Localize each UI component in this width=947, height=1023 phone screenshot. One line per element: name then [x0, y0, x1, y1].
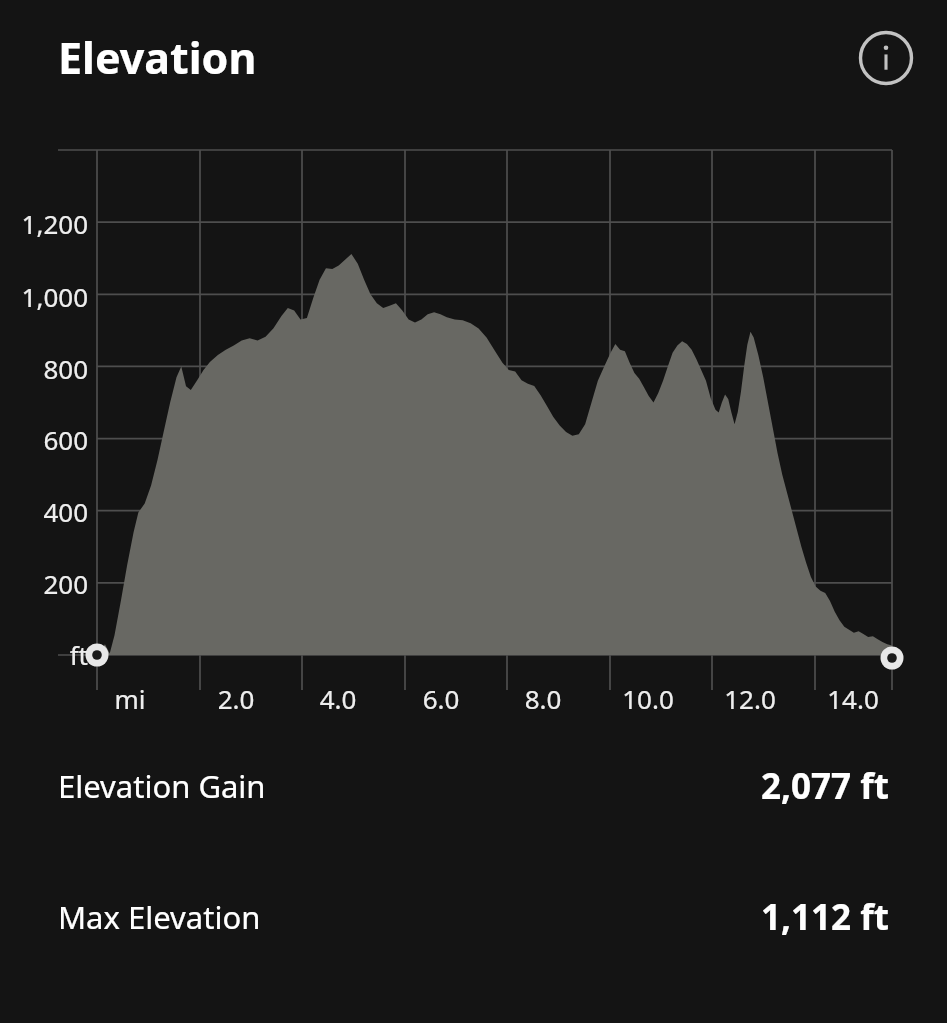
button[interactable]: Elevation Gain — [0, 720, 947, 851]
staticText: 8.0 — [498, 681, 588, 716]
staticText: ft — [0, 637, 88, 672]
staticText: mi — [85, 681, 175, 716]
staticText: 1,112 ft — [761, 893, 889, 941]
staticText: 400 — [0, 494, 88, 529]
staticText: 2,077 ft — [761, 762, 889, 810]
staticText: 1,000 — [0, 279, 88, 314]
button[interactable]: Information — [858, 30, 914, 86]
staticText: 1,200 — [0, 206, 88, 241]
staticText: 600 — [0, 422, 88, 457]
button[interactable]: Max Elevation — [0, 851, 947, 982]
staticText: Max Elevation — [58, 896, 261, 938]
staticText: 12.0 — [705, 681, 795, 716]
staticText: 10.0 — [603, 681, 693, 716]
staticText: 2.0 — [191, 681, 281, 716]
staticText: Elevation — [58, 28, 257, 87]
staticText: Elevation Gain — [58, 765, 266, 807]
staticText: 800 — [0, 351, 88, 386]
staticText: 6.0 — [396, 681, 486, 716]
staticText: 14.0 — [808, 681, 898, 716]
staticText: 4.0 — [293, 681, 383, 716]
staticText: 200 — [0, 566, 88, 601]
